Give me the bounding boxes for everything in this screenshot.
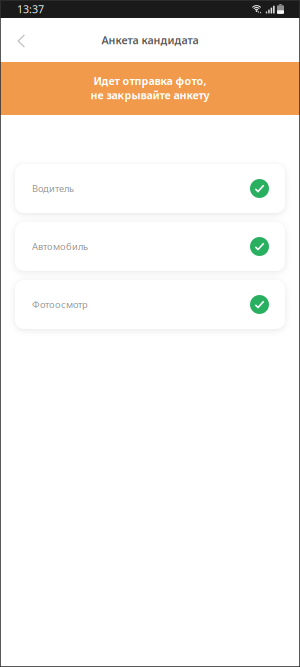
staticText: 13:37 [17, 2, 44, 16]
button[interactable]: Фотоосмотр [15, 280, 285, 329]
button[interactable]: Автомобиль [15, 222, 285, 271]
button[interactable]: Водитель [15, 164, 285, 213]
staticText: Анкета кандидата [101, 33, 198, 47]
staticText: Фотоосмотр [32, 298, 88, 311]
staticText: Идет отправка фото, [93, 74, 206, 88]
staticText: не закрывайте анкету [90, 88, 209, 102]
staticText: Автомобиль [32, 240, 88, 253]
button[interactable]: Back [0, 18, 39, 62]
staticText: Водитель [32, 182, 74, 195]
